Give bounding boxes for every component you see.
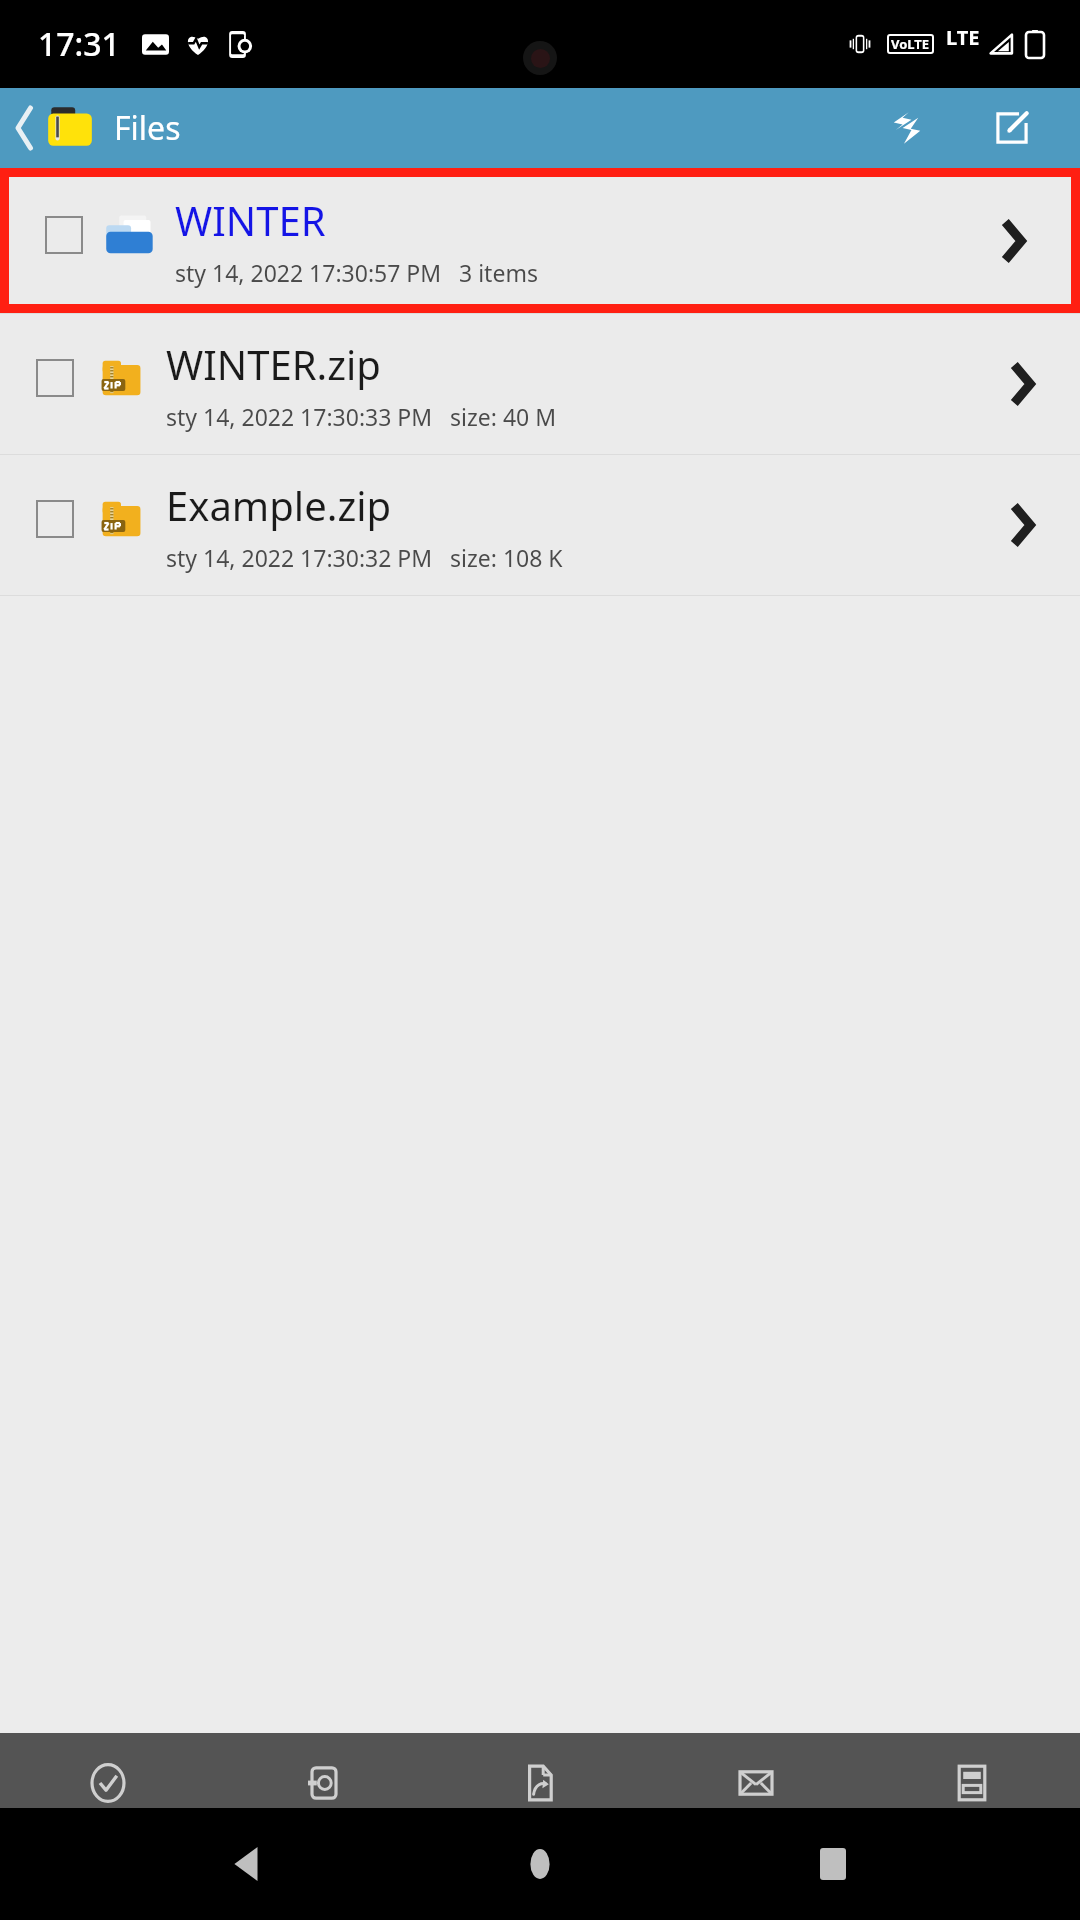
staticText: 17:31 (38, 22, 120, 66)
button[interactable]: Select Example.zip (36, 500, 74, 538)
staticText: sty 14, 2022 17:30:57 PM 3 items (175, 257, 538, 288)
button[interactable]: Select WINTER.zip (36, 359, 74, 397)
staticText: Files (114, 106, 181, 150)
button[interactable]: Files (14, 102, 181, 154)
button[interactable]: Open WINTER (981, 209, 1045, 273)
button[interactable]: View mode (864, 1733, 1080, 1833)
button[interactable]: Select WINTER.zip (0, 314, 1080, 454)
button[interactable]: Select all (0, 1733, 216, 1833)
staticText: sty 14, 2022 17:30:32 PM size: 108 K (166, 542, 563, 573)
staticText: LTE (946, 24, 980, 51)
button[interactable]: Open Example.zip (990, 493, 1054, 557)
button[interactable]: Open WINTER.zip (990, 352, 1054, 416)
button[interactable]: Refresh (868, 90, 944, 166)
button[interactable]: Send email (648, 1733, 864, 1833)
button[interactable]: Share file (432, 1733, 648, 1833)
button[interactable]: Select Example.zip (0, 455, 1080, 595)
button[interactable]: Select WINTER (45, 216, 83, 254)
staticText: Example.zip (166, 478, 392, 532)
button[interactable]: Select WINTER (9, 177, 1071, 304)
button[interactable]: Back (203, 1819, 293, 1909)
button[interactable]: Recent apps (788, 1819, 878, 1909)
staticText: WINTER (175, 193, 326, 247)
button[interactable]: Home (495, 1819, 585, 1909)
button[interactable]: Extract (216, 1733, 432, 1833)
staticText: sty 14, 2022 17:30:33 PM size: 40 M (166, 401, 557, 432)
button[interactable]: Edit (974, 90, 1050, 166)
staticText: VoLTE (891, 35, 930, 53)
staticText: WINTER.zip (166, 337, 381, 391)
